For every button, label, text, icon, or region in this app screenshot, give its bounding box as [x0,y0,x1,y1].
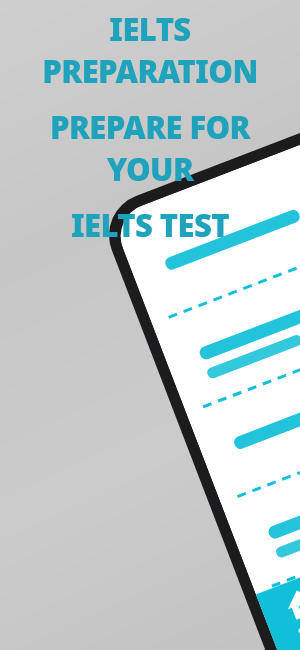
staticText: PREPARE FOR YOUR [8,106,292,190]
button[interactable]: IELTS PREPARATION [8,8,292,246]
staticText: IELTS TEST [8,204,292,246]
staticText: IELTS PREPARATION [8,8,292,92]
